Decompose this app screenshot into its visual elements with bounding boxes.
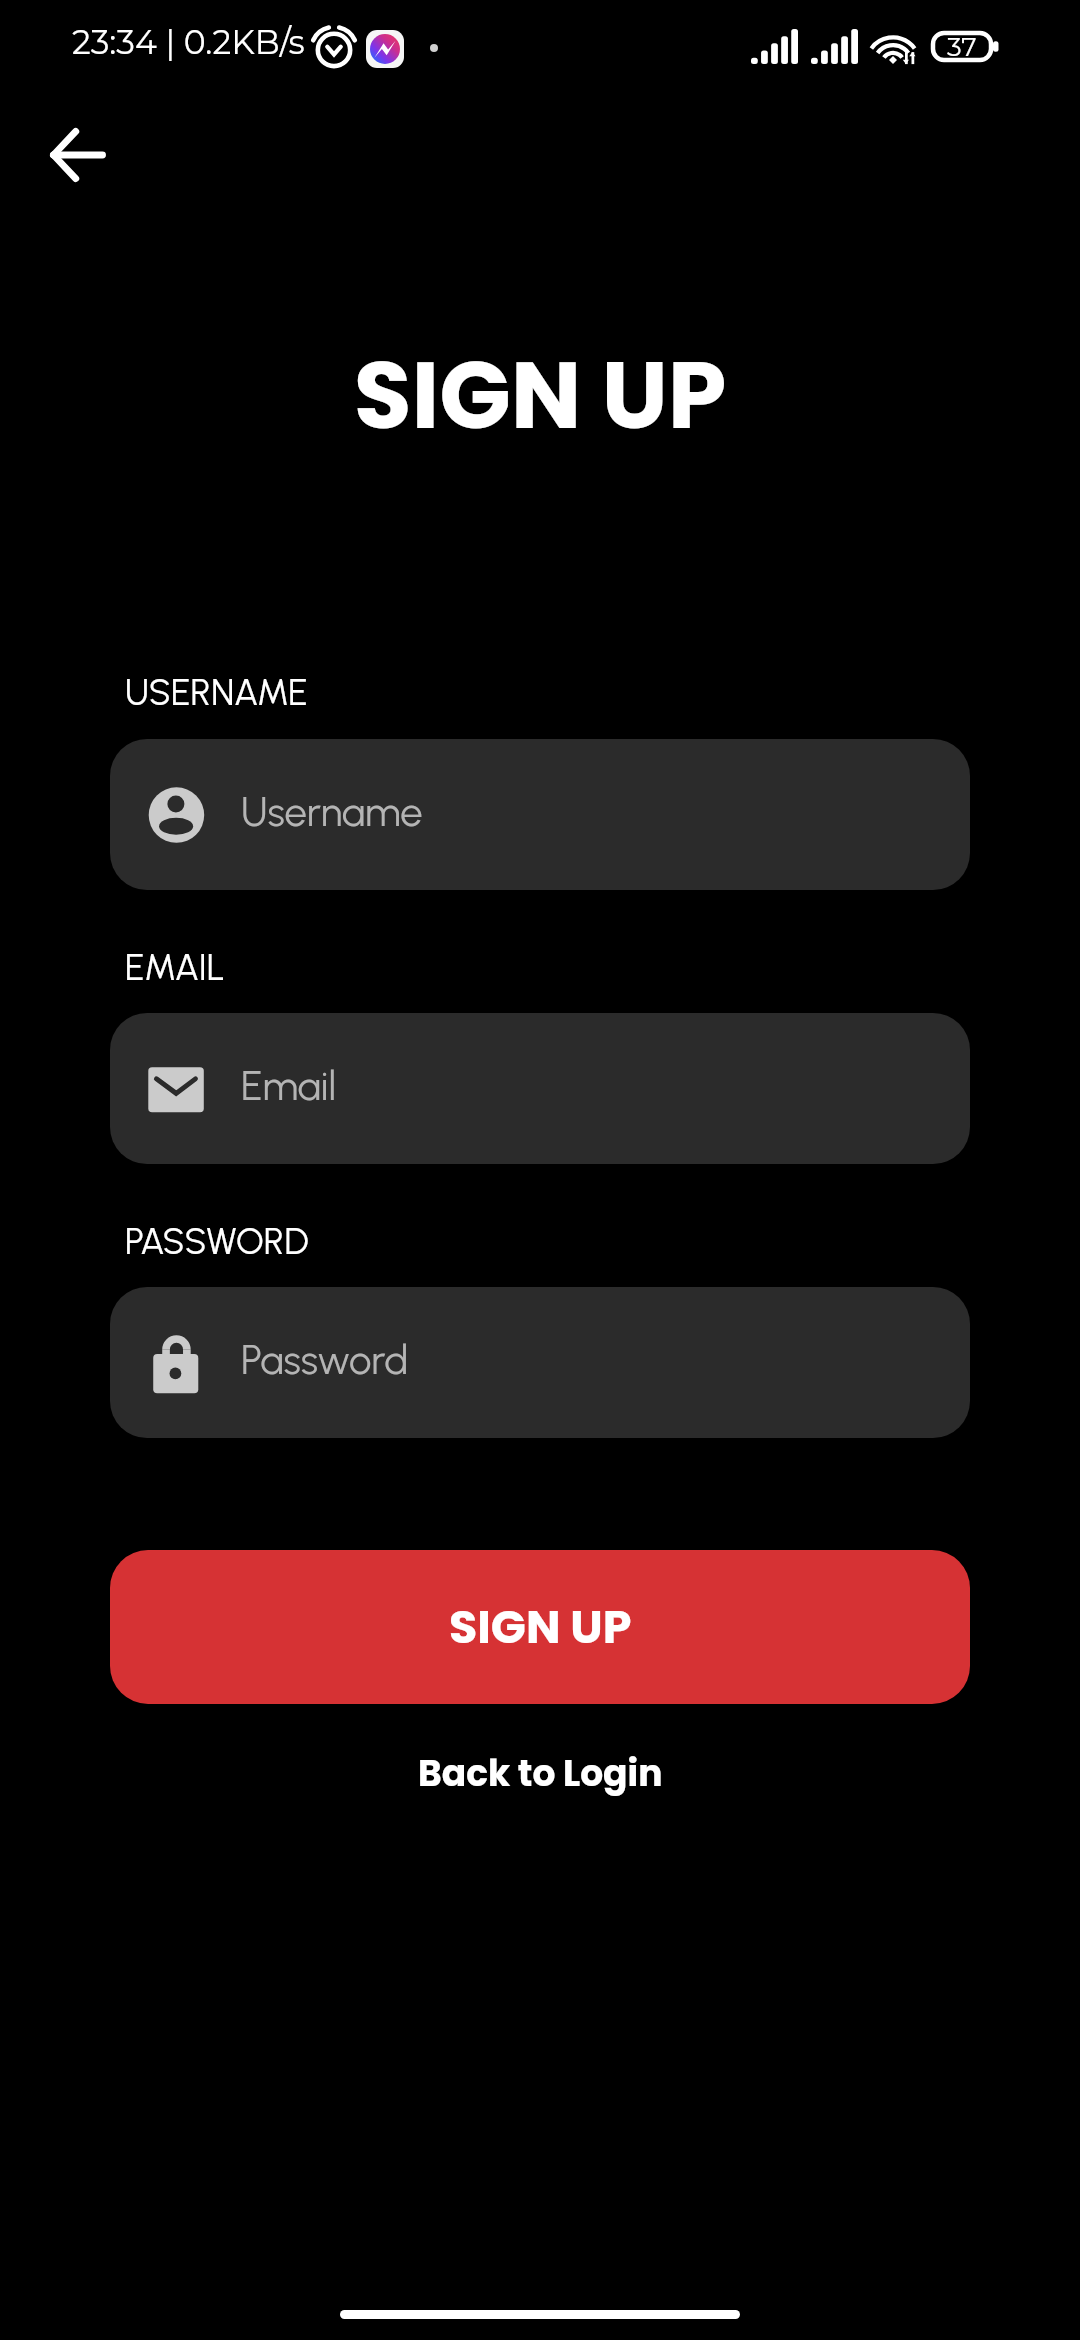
button[interactable]: Username bbox=[110, 739, 970, 890]
staticText: 23:34 | 0.2KB/s bbox=[72, 22, 305, 62]
staticText: SIGN UP bbox=[449, 1595, 632, 1659]
staticText: Password bbox=[241, 1336, 409, 1384]
staticText: Username bbox=[241, 788, 423, 836]
button[interactable]: Back bbox=[34, 111, 122, 199]
button[interactable]: Email bbox=[110, 1013, 970, 1164]
button[interactable]: Back to Login bbox=[398, 1740, 683, 1806]
staticText: SIGN UP bbox=[0, 329, 1080, 461]
staticText: 37 bbox=[947, 31, 977, 62]
button[interactable]: SIGN UP bbox=[110, 1550, 970, 1704]
staticText: Back to Login bbox=[418, 1748, 663, 1798]
staticText: USERNAME bbox=[125, 671, 308, 714]
staticText: EMAIL bbox=[125, 946, 225, 989]
button[interactable]: Password bbox=[110, 1287, 970, 1438]
staticText: PASSWORD bbox=[125, 1220, 309, 1263]
staticText: Email bbox=[241, 1062, 337, 1110]
